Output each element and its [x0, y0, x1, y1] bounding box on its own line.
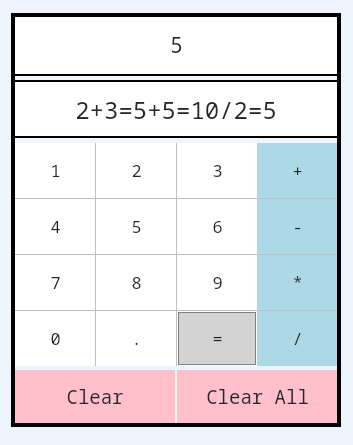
staticText: 9: [212, 271, 223, 294]
button[interactable]: +: [257, 143, 337, 198]
button[interactable]: 5: [96, 199, 176, 254]
button[interactable]: .: [96, 311, 176, 366]
button[interactable]: 1: [15, 143, 95, 198]
button[interactable]: 8: [96, 255, 176, 310]
staticText: +: [292, 159, 303, 182]
staticText: .: [131, 327, 142, 350]
staticText: *: [292, 271, 303, 294]
staticText: =: [212, 327, 223, 350]
staticText: 2+3=5+5=10/2=5: [75, 93, 277, 126]
button[interactable]: 3: [177, 143, 257, 198]
staticText: 8: [131, 271, 142, 294]
staticText: 4: [50, 215, 61, 238]
staticText: 0: [50, 327, 61, 350]
button[interactable]: 9: [177, 255, 257, 310]
staticText: 2: [131, 159, 142, 182]
button[interactable]: =: [179, 313, 255, 364]
button[interactable]: 2: [96, 143, 176, 198]
staticText: 5: [170, 31, 183, 60]
button[interactable]: Clear All: [177, 370, 337, 423]
staticText: /: [292, 327, 303, 350]
button[interactable]: *: [257, 255, 337, 310]
button[interactable]: -: [257, 199, 337, 254]
staticText: 7: [50, 271, 61, 294]
button[interactable]: 4: [15, 199, 95, 254]
button[interactable]: 7: [15, 255, 95, 310]
staticText: 5: [131, 215, 142, 238]
staticText: Clear All: [206, 384, 309, 410]
button[interactable]: /: [257, 311, 337, 366]
staticText: -: [292, 215, 303, 238]
staticText: 6: [212, 215, 223, 238]
button[interactable]: Clear: [15, 370, 175, 423]
button[interactable]: 6: [177, 199, 257, 254]
button[interactable]: 0: [15, 311, 95, 366]
staticText: Clear: [66, 384, 124, 410]
staticText: 1: [50, 159, 61, 182]
staticText: 3: [212, 159, 223, 182]
